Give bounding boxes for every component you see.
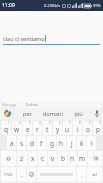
button[interactable]: .: [77, 167, 86, 182]
staticText: 0: [99, 121, 101, 125]
staticText: x: [31, 154, 35, 163]
staticText: s: [20, 139, 24, 148]
staticText: per: [23, 110, 32, 117]
staticText: t: [46, 125, 49, 134]
button[interactable]: a: [7, 136, 16, 150]
staticText: f: [40, 139, 43, 148]
staticText: g: [50, 139, 54, 148]
button[interactable]: Voice input: [90, 107, 103, 120]
staticText: c: [41, 154, 45, 163]
button[interactable]: Shift: [1, 151, 16, 166]
staticText: 11:09: [2, 2, 15, 9]
staticText: 5: [49, 121, 51, 125]
staticText: Messaggi: [2, 103, 17, 107]
staticText: e: [26, 125, 30, 134]
staticText: 9: [89, 121, 91, 125]
staticText: v: [51, 154, 55, 163]
staticText: 3: [29, 121, 31, 125]
button[interactable]: Google search: [0, 107, 15, 120]
staticText: Outlook: [26, 103, 38, 107]
button[interactable]: 7: [63, 121, 72, 135]
button[interactable]: 2: [12, 121, 22, 135]
button[interactable]: b: [58, 151, 67, 166]
button[interactable]: più: [67, 107, 90, 120]
staticText: h: [59, 139, 64, 148]
button[interactable]: 8: [73, 121, 82, 135]
staticText: 4: [39, 121, 41, 125]
button[interactable]: f: [37, 136, 46, 150]
button[interactable]: v: [48, 151, 57, 166]
staticText: 8: [79, 121, 81, 125]
button[interactable]: 6: [53, 121, 62, 135]
staticText: 2: [19, 121, 21, 125]
staticText: k: [80, 139, 84, 148]
button[interactable]: Emoji: [27, 167, 36, 182]
button[interactable]: domani: [39, 107, 67, 120]
staticText: d: [30, 139, 34, 148]
button[interactable]: 0: [93, 121, 102, 135]
staticText: 7: [69, 121, 71, 125]
staticText: più: [74, 110, 83, 117]
button[interactable]: Space: [37, 167, 76, 182]
button[interactable]: d: [27, 136, 36, 150]
button[interactable]: Backspace: [88, 151, 102, 166]
staticText: a: [10, 139, 14, 148]
button[interactable]: n: [68, 151, 77, 166]
button[interactable]: z: [17, 151, 27, 166]
button[interactable]: per: [15, 107, 39, 120]
button[interactable]: k: [77, 136, 86, 150]
button[interactable]: s: [17, 136, 26, 150]
button[interactable]: l: [87, 136, 96, 150]
staticText: r: [36, 125, 39, 134]
staticText: o: [86, 125, 90, 134]
staticText: p: [96, 125, 100, 134]
staticText: b: [61, 154, 65, 163]
staticText: j: [71, 139, 73, 148]
button[interactable]: Enter: [87, 167, 102, 182]
staticText: i: [77, 125, 79, 134]
staticText: 6.20Kb/s: [44, 3, 61, 8]
button[interactable]: ,: [17, 167, 26, 182]
staticText: .: [81, 171, 83, 178]
button[interactable]: g: [47, 136, 56, 150]
button[interactable]: h: [57, 136, 66, 150]
staticText: w: [14, 125, 20, 134]
button[interactable]: ciao ci sentiamo: [0, 35, 103, 45]
staticText: z: [20, 154, 24, 163]
button[interactable]: m: [78, 151, 87, 166]
staticText: u: [65, 125, 70, 134]
staticText: y: [56, 125, 60, 134]
button[interactable]: x: [28, 151, 37, 166]
button[interactable]: 5: [43, 121, 52, 135]
staticText: n: [70, 154, 75, 163]
staticText: l: [91, 139, 93, 148]
staticText: domani: [43, 110, 63, 117]
staticText: ciao ci sentiamo: [3, 35, 45, 42]
button[interactable]: c: [38, 151, 47, 166]
button[interactable]: ?123: [1, 167, 16, 182]
staticText: 1: [8, 121, 10, 125]
button[interactable]: 3: [23, 121, 32, 135]
staticText: ,: [21, 171, 23, 178]
button[interactable]: 1: [1, 121, 11, 135]
staticText: q: [4, 125, 8, 134]
button[interactable]: 9: [83, 121, 92, 135]
staticText: m: [79, 154, 86, 163]
button[interactable]: 4: [33, 121, 42, 135]
staticText: ?123: [4, 172, 13, 177]
staticText: 6: [59, 121, 61, 125]
button[interactable]: j: [67, 136, 76, 150]
staticText: 99%: [93, 3, 101, 8]
